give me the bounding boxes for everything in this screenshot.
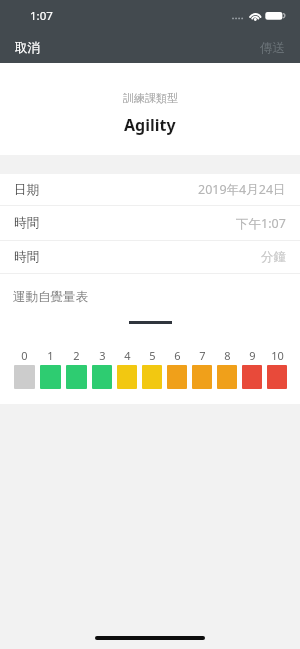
button[interactable]: 傳送 [247,31,300,61]
staticText: 9 [249,348,256,363]
staticText: 3 [99,348,106,363]
button[interactable]: RPE 10 [267,365,287,389]
staticText: 5 [149,348,156,363]
staticText: 2019年4月24日 [198,181,286,198]
staticText: 0 [21,348,28,363]
staticText: 時間 [14,249,39,265]
staticText: 取消 [15,40,40,56]
staticText: 1:07 [30,8,53,24]
staticText: Agility [124,114,176,136]
button[interactable]: RPE 1 [40,365,61,389]
staticText: 日期 [14,182,39,198]
button[interactable]: RPE 5 [142,365,162,389]
button[interactable]: 日期 [0,174,300,205]
button[interactable]: RPE 9 [242,365,262,389]
button[interactable]: RPE 7 [192,365,212,389]
staticText: 7 [199,348,206,363]
button[interactable]: RPE 4 [117,365,137,389]
staticText: 訓練課類型 [123,91,178,105]
button[interactable]: RPE 6 [167,365,187,389]
button[interactable]: RPE 3 [92,365,112,389]
staticText: 1 [47,348,54,363]
staticText: 傳送 [260,40,285,56]
button[interactable]: RPE 8 [217,365,237,389]
button[interactable]: 取消 [0,31,53,61]
staticText: 10 [271,348,284,363]
staticText: 6 [174,348,181,363]
staticText: 2 [73,348,80,363]
staticText: 分鐘 [261,249,286,265]
staticText: 運動自覺量表 [13,289,88,305]
button[interactable]: 時間 [0,241,300,273]
button[interactable]: RPE 2 [66,365,87,389]
button[interactable]: 時間 [0,206,300,240]
staticText: 下午1:07 [236,215,286,232]
staticText: 4 [124,348,131,363]
staticText: 時間 [14,215,39,231]
staticText: 8 [224,348,231,363]
